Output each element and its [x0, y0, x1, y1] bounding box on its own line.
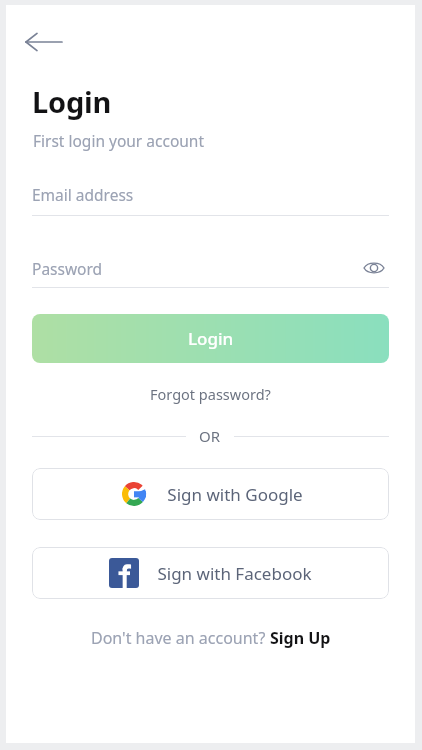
- staticText: Sign Up: [270, 627, 331, 649]
- staticText: First login your account: [33, 130, 205, 151]
- staticText: Login: [188, 327, 234, 350]
- staticText: Forgot password?: [150, 384, 271, 404]
- button[interactable]: Don't have an account?: [91, 627, 331, 649]
- staticText: Sign with Facebook: [157, 562, 312, 585]
- staticText: Email address: [32, 184, 134, 205]
- staticText: Sign with Google: [167, 483, 303, 506]
- staticText: Don't have an account?: [91, 627, 270, 649]
- staticText: OR: [199, 426, 221, 446]
- button[interactable]: Login: [32, 314, 389, 363]
- button[interactable]: Email address: [32, 184, 389, 216]
- button[interactable]: Show password: [359, 256, 389, 280]
- button[interactable]: Sign with Google: [32, 468, 389, 520]
- button[interactable]: Forgot password?: [142, 381, 279, 407]
- button[interactable]: Back: [24, 27, 72, 57]
- staticText: Login: [32, 82, 112, 121]
- button[interactable]: Sign with Facebook: [32, 547, 389, 599]
- button[interactable]: Password: [32, 258, 359, 279]
